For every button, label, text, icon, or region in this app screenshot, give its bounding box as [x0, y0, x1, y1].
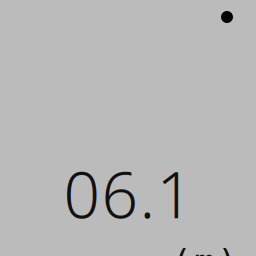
button[interactable]: Recording indicator	[221, 11, 233, 23]
staticText: 06.1	[63, 151, 193, 236]
staticText: (m)	[171, 243, 238, 256]
